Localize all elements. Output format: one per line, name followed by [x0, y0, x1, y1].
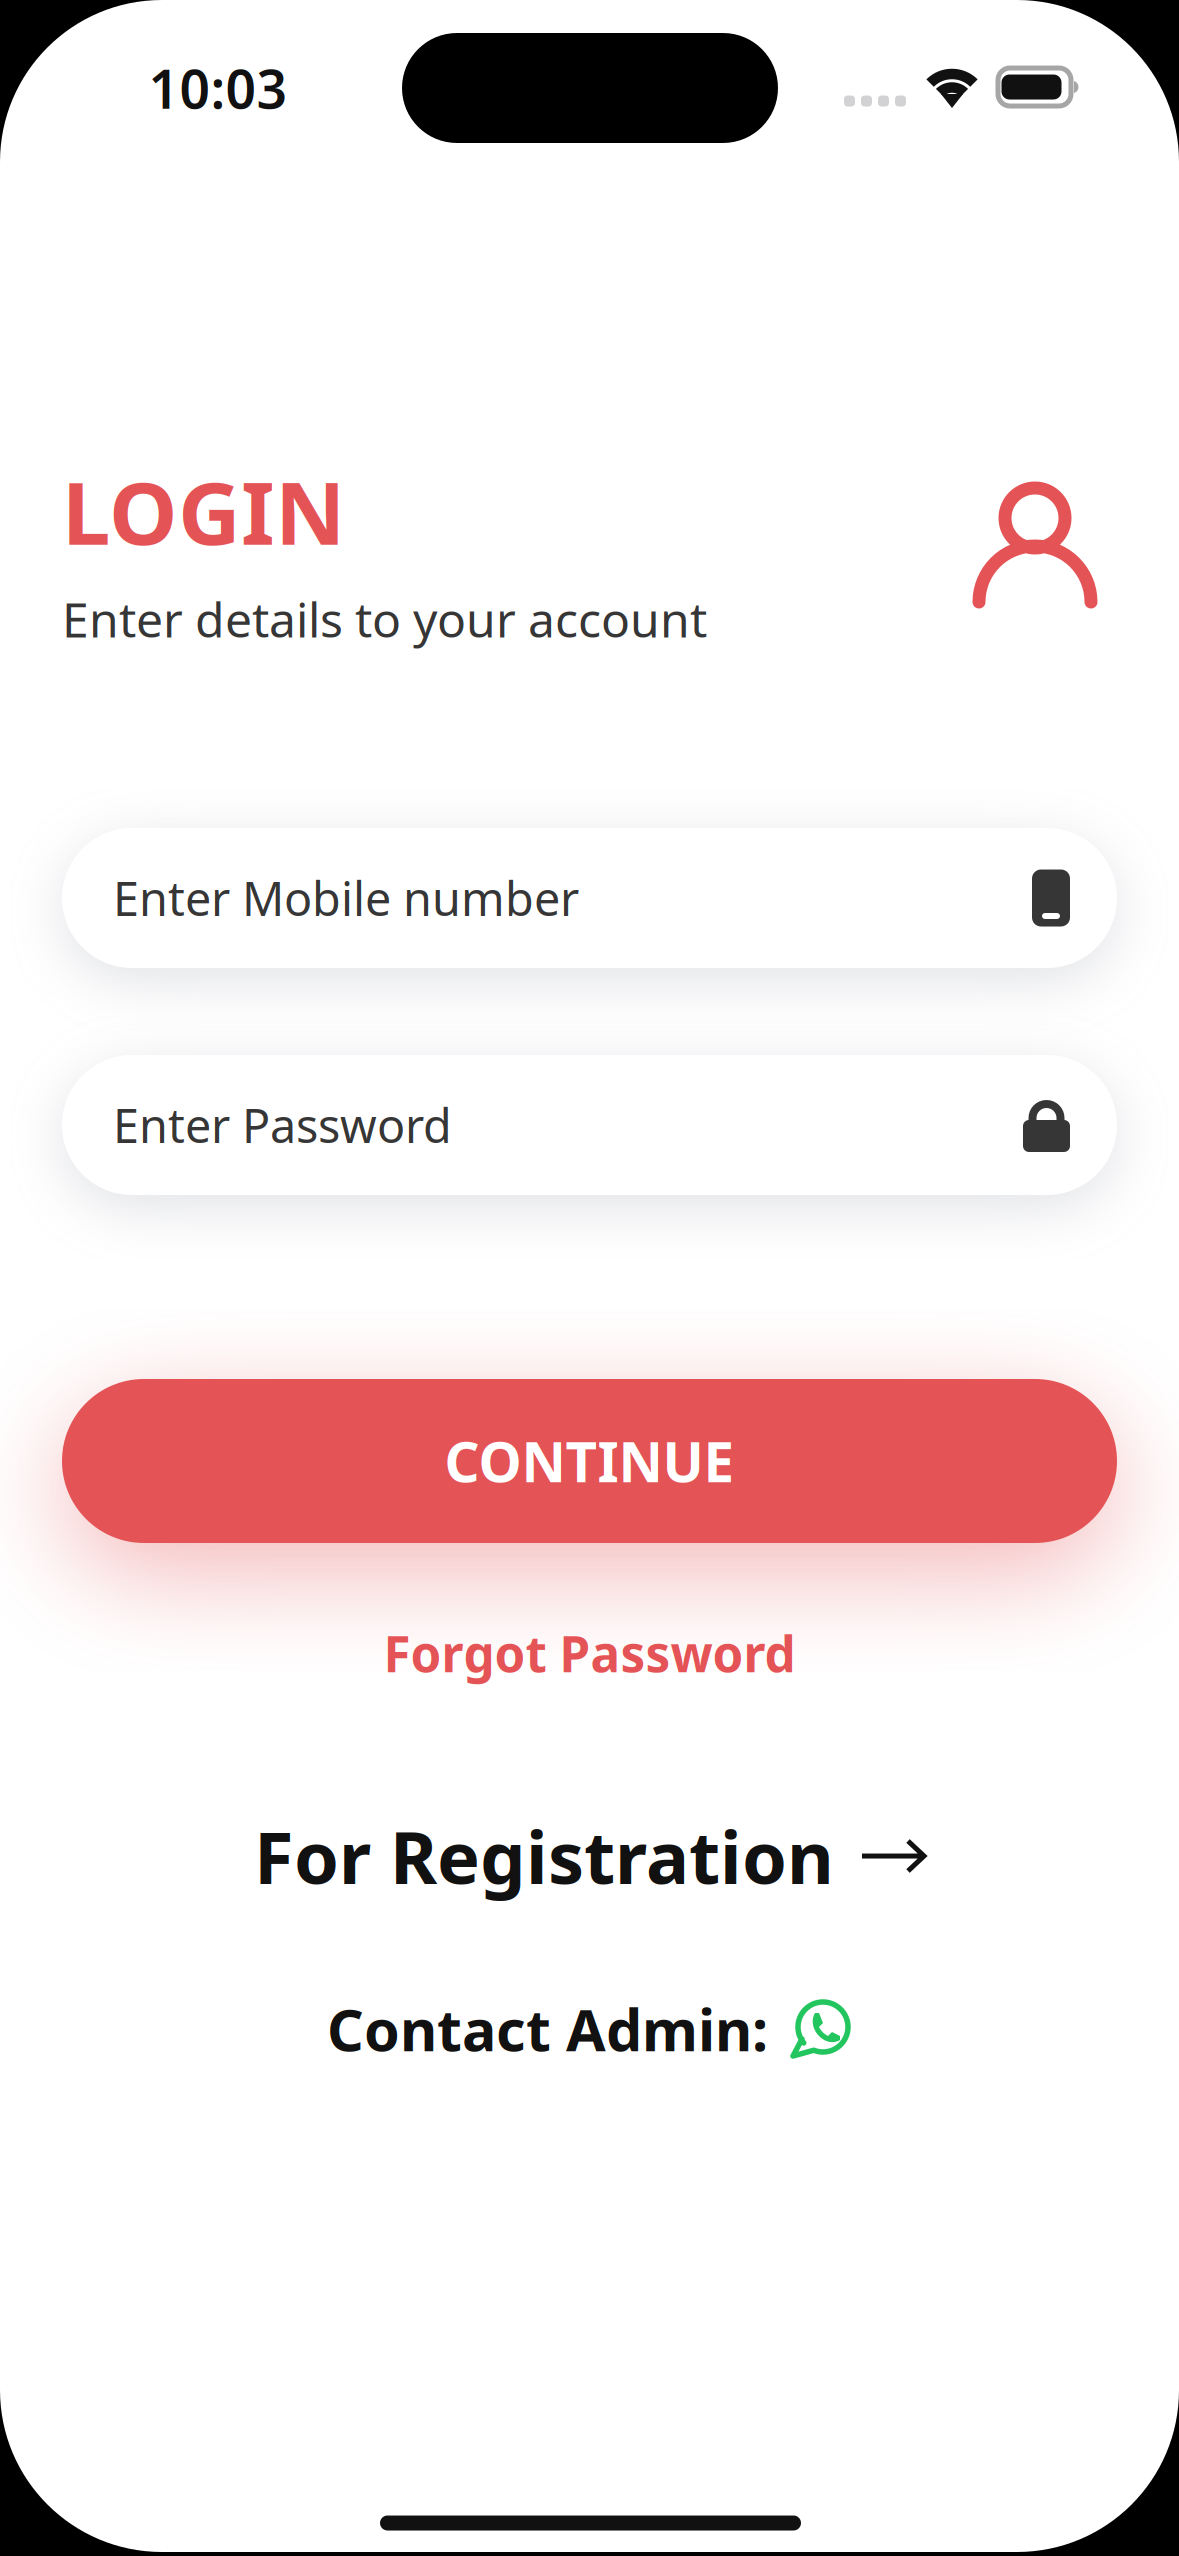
staticText: Forgot Password: [383, 1620, 795, 1686]
button[interactable]: Enter Mobile number: [62, 828, 1117, 968]
staticText: Contact Admin:: [327, 1991, 768, 2067]
staticText: Enter details to your account: [62, 587, 707, 651]
staticText: Enter Mobile number: [113, 867, 579, 929]
button[interactable]: Contact Admin:: [317, 1981, 862, 2077]
button[interactable]: For Registration: [244, 1798, 936, 1914]
staticText: For Registration: [254, 1808, 834, 1904]
staticText: LOGIN: [62, 453, 345, 569]
button[interactable]: CONTINUE: [62, 1379, 1117, 1543]
button[interactable]: Enter Password: [62, 1055, 1117, 1195]
staticText: CONTINUE: [444, 1425, 734, 1497]
staticText: 10:03: [148, 53, 287, 123]
staticText: Enter Password: [113, 1094, 452, 1156]
button[interactable]: Forgot Password: [363, 1608, 815, 1698]
